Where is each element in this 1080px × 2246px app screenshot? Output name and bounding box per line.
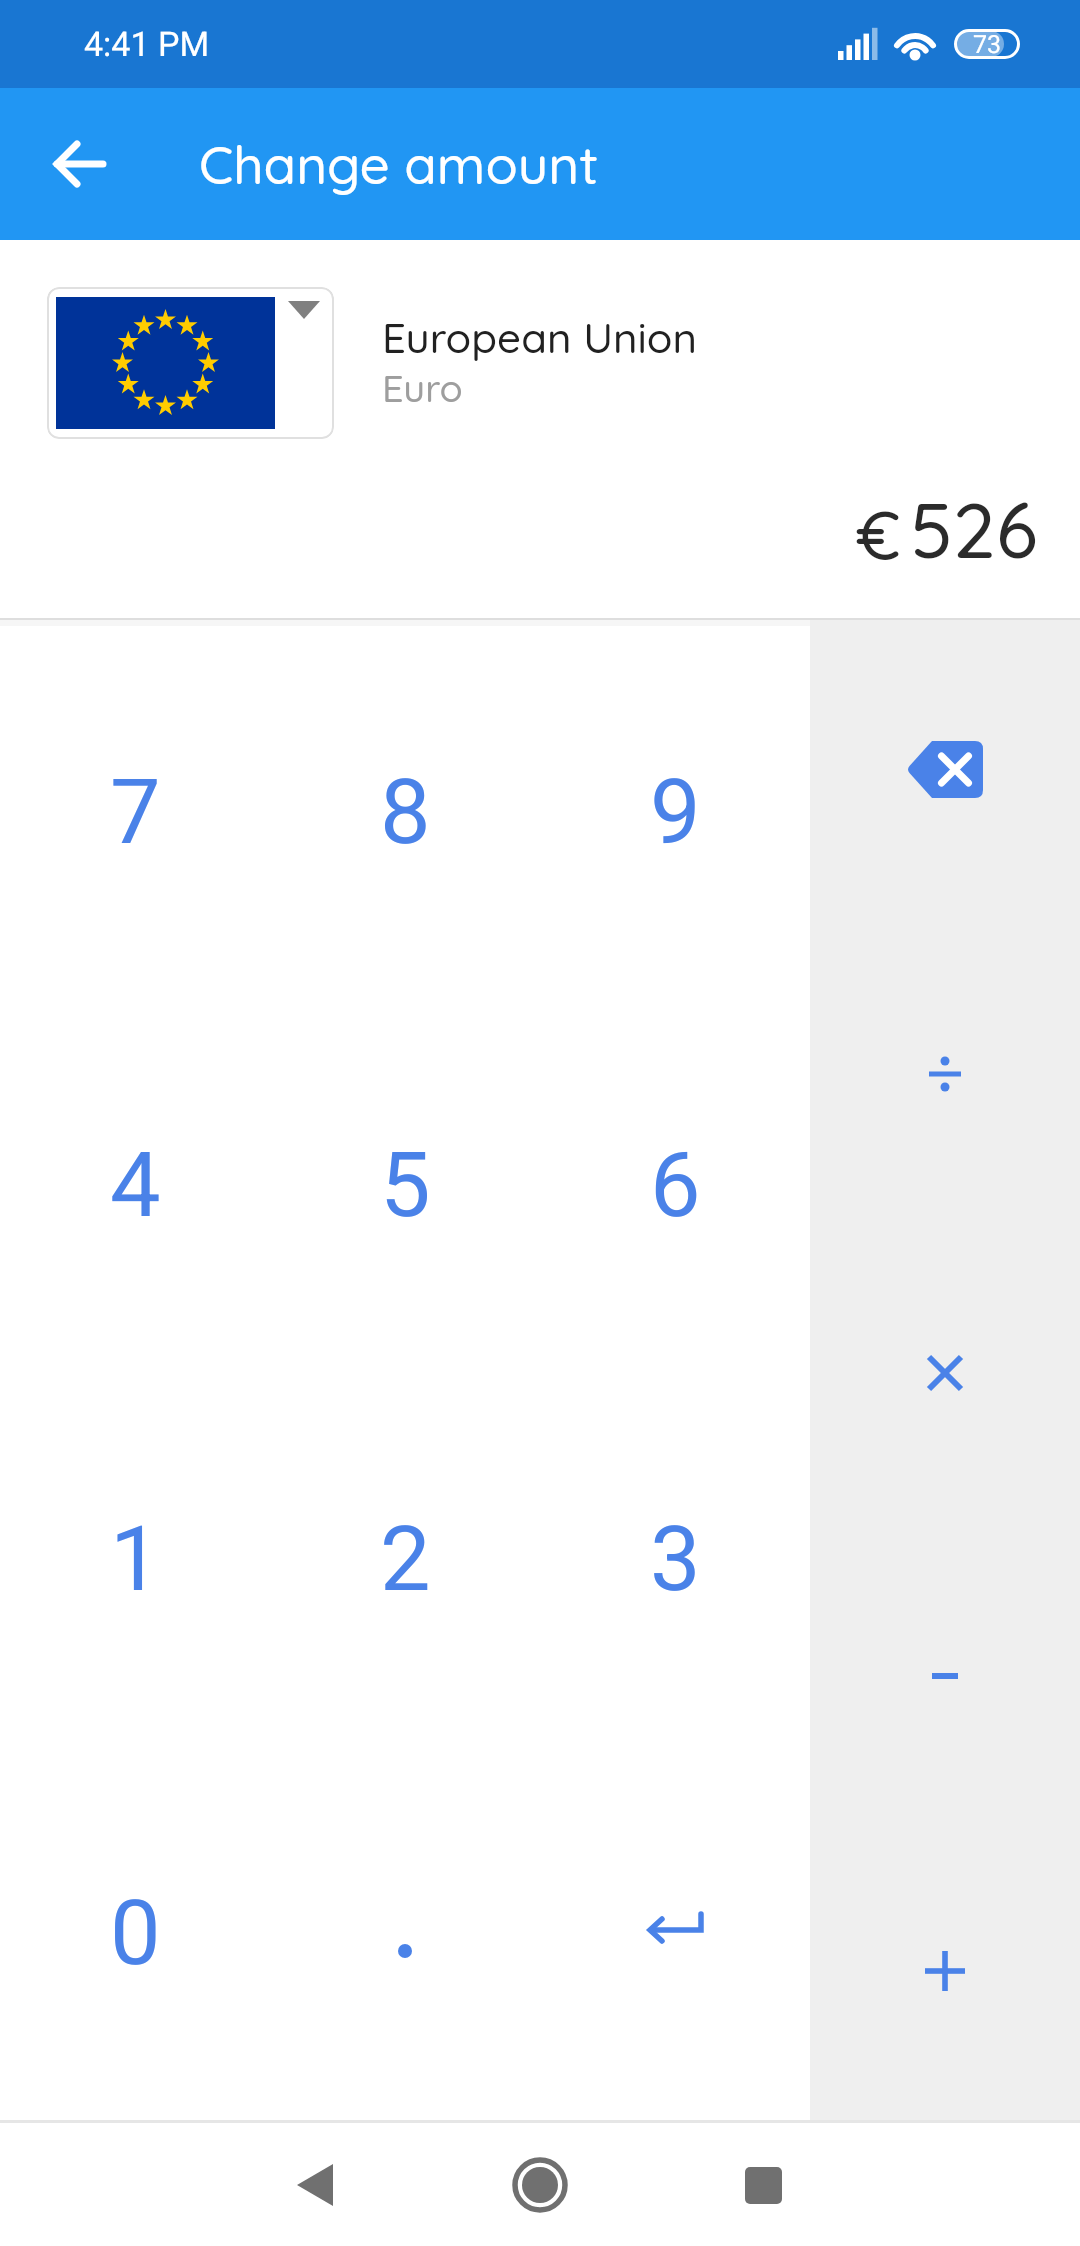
- staticText: 8: [380, 760, 431, 865]
- button[interactable]: [270, 1746, 540, 2120]
- button[interactable]: 7: [0, 626, 270, 999]
- button[interactable]: [810, 1821, 1080, 2120]
- staticText: 7: [110, 760, 161, 865]
- staticText: 4: [110, 1133, 161, 1238]
- button[interactable]: 2: [270, 1372, 540, 1746]
- button[interactable]: 0: [0, 1746, 270, 2120]
- button[interactable]: 5: [270, 999, 540, 1372]
- staticText: 6: [650, 1133, 701, 1238]
- staticText: 0: [110, 1881, 161, 1986]
- button[interactable]: [36, 120, 124, 208]
- staticText: 9: [650, 760, 701, 865]
- button[interactable]: 6: [540, 999, 810, 1372]
- button[interactable]: [810, 626, 1080, 924]
- button[interactable]: [540, 1746, 810, 2120]
- button[interactable]: [810, 1223, 1080, 1522]
- staticText: 73: [973, 30, 1002, 59]
- staticText: 3: [650, 1507, 701, 1612]
- staticText: Change amount: [199, 131, 599, 197]
- button[interactable]: [47, 287, 334, 439]
- staticText: 5: [380, 1133, 431, 1238]
- button[interactable]: 1: [0, 1372, 270, 1746]
- staticText: Euro: [382, 364, 463, 412]
- button[interactable]: [496, 2141, 584, 2229]
- button[interactable]: 4: [0, 999, 270, 1372]
- button[interactable]: 8: [270, 626, 540, 999]
- staticText: 2: [380, 1507, 431, 1612]
- staticText: 526: [910, 481, 1038, 577]
- staticText: 1: [110, 1507, 161, 1612]
- button[interactable]: 9: [540, 626, 810, 999]
- button[interactable]: 3: [540, 1372, 810, 1746]
- staticText: European Union: [382, 311, 697, 364]
- button[interactable]: [810, 924, 1080, 1223]
- button[interactable]: [719, 2141, 807, 2229]
- button[interactable]: [810, 1522, 1080, 1821]
- button[interactable]: [271, 2141, 359, 2229]
- staticText: €: [856, 492, 901, 577]
- staticText: 4:41 PM: [84, 24, 210, 64]
